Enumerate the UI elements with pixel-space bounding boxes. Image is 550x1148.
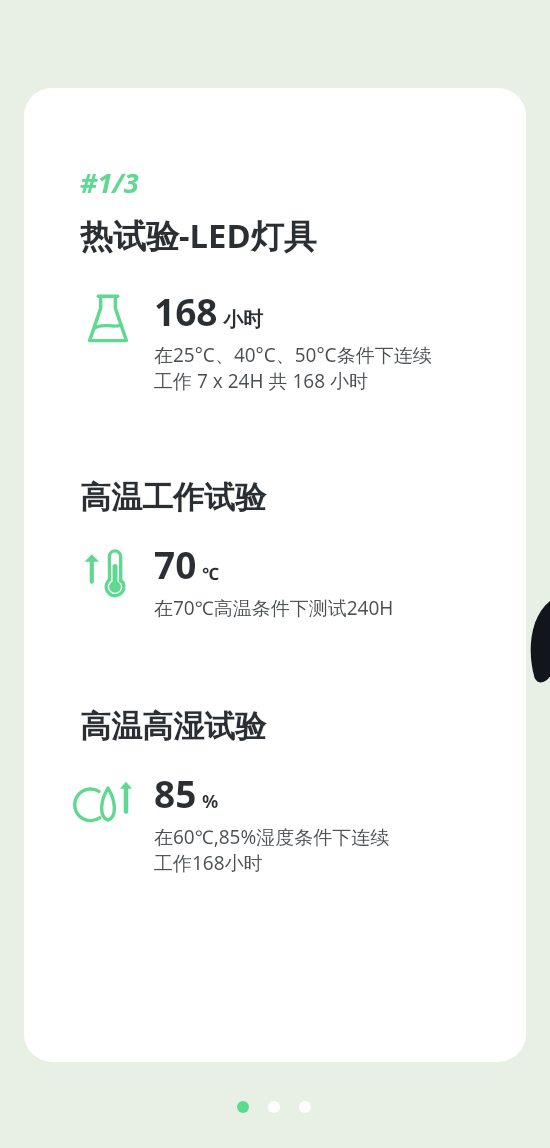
staticText: 热试验-LED灯具 (80, 213, 317, 258)
staticText: 在70℃高温条件下测试240H (154, 595, 394, 621)
staticText: 在60℃,85%湿度条件下连续 (154, 824, 390, 850)
other: Side handle (528, 598, 550, 684)
other: High temperature test (81, 545, 135, 599)
staticText: 168 (154, 286, 218, 336)
staticText: 高温高湿试验 (80, 707, 266, 746)
staticText: 85 (154, 768, 197, 818)
staticText: 小时 (223, 307, 263, 332)
staticText: 在25°C、40°C、50°C条件下连续 (154, 342, 432, 368)
other: High humidity test (79, 777, 137, 825)
button[interactable] (237, 1101, 249, 1113)
staticText: ℃ (202, 562, 220, 585)
button[interactable] (268, 1101, 280, 1113)
staticText: 70 (154, 539, 197, 589)
staticText: 工作 7 x 24H 共 168 小时 (154, 368, 368, 394)
button[interactable]: High temperature test (76, 539, 502, 621)
staticText: #1/3 (80, 164, 139, 201)
button[interactable] (299, 1101, 311, 1113)
button[interactable]: High humidity test (76, 768, 502, 876)
other: Thermal test flask (85, 292, 131, 346)
button[interactable]: Thermal test flask (76, 286, 502, 394)
staticText: 高温工作试验 (80, 478, 266, 517)
staticText: % (202, 789, 219, 814)
staticText: 工作168小时 (154, 850, 263, 876)
